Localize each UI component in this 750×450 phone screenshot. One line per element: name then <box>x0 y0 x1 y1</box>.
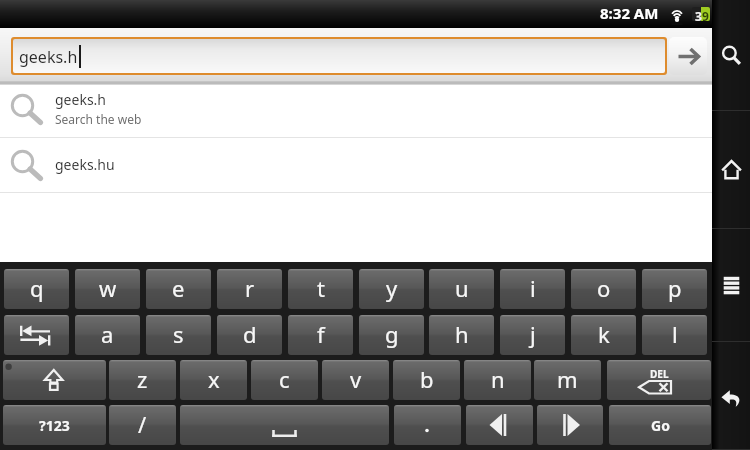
button[interactable]: Go <box>609 405 711 445</box>
button[interactable]: s <box>146 315 211 355</box>
button[interactable]: d <box>217 315 282 355</box>
staticText: t <box>317 273 325 303</box>
staticText: 3 <box>695 8 702 21</box>
staticText: 8:32 AM <box>600 3 659 23</box>
staticText: u <box>455 273 469 303</box>
staticText: 9 <box>702 8 709 21</box>
staticText: g <box>385 319 399 349</box>
button[interactable]: geeks.h <box>13 39 665 73</box>
staticText: w <box>99 273 117 303</box>
staticText: r <box>245 273 255 303</box>
button[interactable]: Cursor right <box>537 405 603 445</box>
button[interactable]: r <box>217 269 282 309</box>
button[interactable]: v <box>322 360 389 400</box>
button[interactable]: t <box>288 269 353 309</box>
staticText: f <box>317 319 325 349</box>
staticText: h <box>455 319 469 349</box>
staticText: i <box>530 273 536 303</box>
button[interactable]: h <box>429 315 494 355</box>
button[interactable]: q <box>4 269 69 309</box>
button[interactable]: n <box>464 360 531 400</box>
staticText: Search the web <box>55 111 142 127</box>
staticText: x <box>208 364 220 394</box>
button[interactable]: / <box>109 405 176 445</box>
button[interactable]: m <box>534 360 601 400</box>
button[interactable]: f <box>288 315 353 355</box>
button[interactable]: geeks.h <box>0 85 712 138</box>
staticText: q <box>30 273 44 303</box>
staticText: Go <box>651 416 670 435</box>
button[interactable]: x <box>180 360 247 400</box>
button[interactable]: u <box>429 269 494 309</box>
staticText: d <box>243 319 257 349</box>
button[interactable]: l <box>642 315 707 355</box>
button[interactable]: y <box>359 269 424 309</box>
button[interactable]: g <box>359 315 424 355</box>
staticText: n <box>491 364 505 394</box>
button[interactable]: Cursor left <box>466 405 533 445</box>
staticText: z <box>137 364 148 394</box>
button[interactable]: j <box>500 315 565 355</box>
button[interactable]: c <box>251 360 318 400</box>
staticText: geeks.hu <box>55 155 115 174</box>
button[interactable]: e <box>146 269 211 309</box>
button[interactable]: Search <box>712 0 750 111</box>
button[interactable]: geeks.hu <box>0 138 712 193</box>
staticText: s <box>173 319 184 349</box>
staticText: DEL <box>650 367 669 381</box>
button[interactable]: Space <box>180 405 389 445</box>
button[interactable]: ?123 <box>3 405 106 445</box>
staticText: e <box>172 273 185 303</box>
staticText: p <box>668 273 682 303</box>
staticText: geeks.h <box>55 90 106 109</box>
staticText: j <box>530 319 536 349</box>
button[interactable]: Shift <box>3 360 106 400</box>
staticText: k <box>598 319 610 349</box>
staticText: a <box>101 319 114 349</box>
staticText: / <box>138 409 147 439</box>
button[interactable]: o <box>571 269 636 309</box>
button[interactable]: k <box>571 315 636 355</box>
button[interactable]: Back <box>712 342 750 450</box>
button[interactable]: Tab <box>4 315 69 355</box>
button[interactable]: a <box>75 315 140 355</box>
staticText: m <box>557 364 578 394</box>
staticText: geeks.h <box>19 46 78 68</box>
button[interactable]: i <box>500 269 565 309</box>
button[interactable]: z <box>109 360 176 400</box>
staticText: ?123 <box>39 416 70 435</box>
button[interactable]: w <box>75 269 140 309</box>
staticText: c <box>279 364 290 394</box>
staticText: y <box>386 273 398 303</box>
button[interactable]: p <box>642 269 707 309</box>
staticText: l <box>672 319 678 349</box>
button[interactable]: b <box>393 360 460 400</box>
button[interactable]: Search <box>669 37 707 75</box>
button[interactable]: Home <box>712 111 750 229</box>
staticText: b <box>420 364 434 394</box>
button[interactable]: Period <box>394 405 461 445</box>
button[interactable]: Menu <box>712 229 750 342</box>
button[interactable]: Delete <box>607 360 711 400</box>
staticText: o <box>597 273 611 303</box>
staticText: v <box>350 364 362 394</box>
